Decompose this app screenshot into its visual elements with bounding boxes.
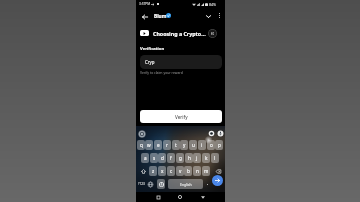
- button[interactable]: Voice input: [216, 129, 225, 138]
- button[interactable]: u: [189, 140, 197, 150]
- staticText: i: [201, 142, 203, 148]
- staticText: m: [204, 168, 209, 174]
- staticText: c: [170, 168, 173, 174]
- staticText: z: [152, 168, 155, 174]
- staticText: n: [196, 168, 199, 174]
- button[interactable]: Gboard: [138, 130, 146, 138]
- button[interactable]: v: [176, 166, 184, 176]
- staticText: q: [140, 142, 143, 148]
- staticText: f: [170, 155, 172, 161]
- button[interactable]: Claim reward: [208, 29, 217, 38]
- button[interactable]: a: [141, 153, 149, 163]
- button[interactable]: w: [145, 140, 153, 150]
- staticText: Cryp: [145, 59, 155, 65]
- button[interactable]: Shift: [137, 166, 149, 176]
- button[interactable]: k: [202, 153, 210, 163]
- button[interactable]: t: [172, 140, 180, 150]
- button[interactable]: n: [193, 166, 201, 176]
- button[interactable]: Expand: [202, 10, 214, 22]
- button[interactable]: Verify: [140, 110, 222, 123]
- button[interactable]: i: [198, 140, 206, 150]
- staticText: s: [153, 155, 156, 161]
- button[interactable]: s: [150, 153, 158, 163]
- staticText: Blum: [154, 13, 167, 20]
- button[interactable]: English: [168, 179, 203, 189]
- button[interactable]: p: [215, 140, 223, 150]
- button[interactable]: e: [154, 140, 162, 150]
- button[interactable]: h: [185, 153, 193, 163]
- staticText: o: [210, 142, 213, 148]
- button[interactable]: Enter: [212, 175, 223, 186]
- button[interactable]: g: [176, 153, 184, 163]
- staticText: Verify: [175, 114, 188, 120]
- button[interactable]: [204, 179, 211, 189]
- button[interactable]: x: [158, 166, 166, 176]
- staticText: r: [166, 142, 168, 148]
- button[interactable]: y: [180, 140, 188, 150]
- staticText: l: [214, 155, 216, 161]
- staticText: a: [144, 155, 147, 161]
- button[interactable]: Backspace: [212, 166, 224, 176]
- staticText: English: [180, 182, 192, 187]
- button[interactable]: m: [202, 166, 210, 176]
- button[interactable]: Switch language: [147, 179, 154, 189]
- button[interactable]: c: [167, 166, 175, 176]
- button[interactable]: j: [193, 153, 201, 163]
- staticText: 84%: [209, 2, 217, 7]
- staticText: t: [175, 142, 177, 148]
- staticText: Choosing a Crypto...: [153, 30, 206, 37]
- staticText: 3:57PM: [139, 2, 151, 6]
- button[interactable]: Emoji: [157, 179, 165, 189]
- staticText: d: [161, 155, 164, 161]
- button[interactable]: l: [211, 153, 219, 163]
- button[interactable]: b: [184, 166, 192, 176]
- staticText: Verify to claim your reward: [140, 70, 183, 75]
- staticText: v: [179, 168, 182, 174]
- button[interactable]: Recents: [153, 192, 163, 202]
- staticText: h: [188, 155, 191, 161]
- button[interactable]: Back: [198, 192, 208, 202]
- staticText: u: [192, 142, 195, 148]
- staticText: b: [187, 168, 190, 174]
- button[interactable]: f: [167, 153, 175, 163]
- staticText: w: [147, 142, 151, 148]
- button[interactable]: z: [149, 166, 157, 176]
- button[interactable]: ?123: [137, 179, 146, 189]
- button[interactable]: q: [137, 140, 145, 150]
- staticText: Verification: [140, 46, 165, 52]
- button[interactable]: o: [207, 140, 215, 150]
- staticText: e: [157, 142, 160, 148]
- button[interactable]: Home: [175, 192, 185, 202]
- button[interactable]: r: [163, 140, 171, 150]
- staticText: ?123: [138, 182, 145, 186]
- staticText: x: [161, 168, 164, 174]
- staticText: k: [205, 155, 208, 161]
- staticText: g: [179, 155, 182, 161]
- staticText: p: [218, 142, 221, 148]
- staticText: y: [183, 142, 186, 148]
- button[interactable]: Settings: [207, 129, 216, 138]
- button[interactable]: Back: [138, 10, 151, 23]
- button[interactable]: More options: [214, 10, 225, 21]
- staticText: j: [196, 155, 198, 161]
- button[interactable]: Cryp: [140, 55, 222, 69]
- button[interactable]: d: [158, 153, 166, 163]
